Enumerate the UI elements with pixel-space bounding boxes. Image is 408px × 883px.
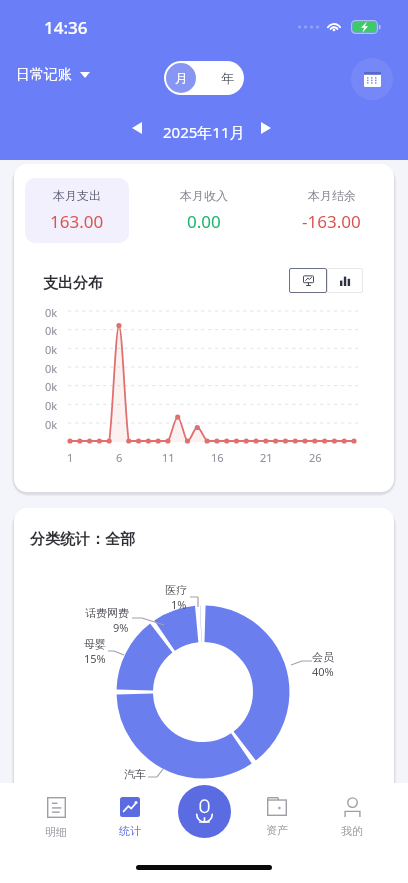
staticText: 统计 <box>119 824 141 838</box>
button[interactable]: Previous month <box>123 114 151 142</box>
button[interactable]: 统计 <box>96 790 164 850</box>
staticText: 0k <box>45 379 58 394</box>
staticText: 资产 <box>266 823 288 837</box>
staticText: 0k <box>45 398 58 413</box>
staticText: 0k <box>45 323 58 338</box>
staticText: 0.00 <box>187 210 221 233</box>
staticText: 2025年11月 <box>163 122 245 142</box>
staticText: 本月结余 <box>308 188 356 203</box>
staticText: 0k <box>45 342 58 357</box>
button[interactable]: Next month <box>252 114 280 142</box>
staticText: -163.00 <box>302 210 361 233</box>
staticText: 1% <box>171 597 187 612</box>
staticText: 年 <box>221 70 234 86</box>
staticText: 母婴 <box>84 637 106 651</box>
button[interactable]: 月 <box>166 63 196 93</box>
button[interactable]: 年 <box>212 63 242 93</box>
button[interactable]: 本月收入 <box>152 178 256 243</box>
staticText: 0k <box>45 417 58 432</box>
staticText: 16 <box>211 450 224 465</box>
staticText: 6 <box>116 450 123 465</box>
staticText: 15% <box>84 651 106 666</box>
staticText: 21 <box>260 450 273 465</box>
button[interactable]: 资产 <box>243 790 311 850</box>
button[interactable]: Calendar <box>351 58 393 100</box>
staticText: 9% <box>113 620 129 635</box>
button[interactable]: Voice record <box>178 785 231 838</box>
staticText: 11 <box>162 450 175 465</box>
staticText: 日常记账 <box>16 66 72 84</box>
staticText: 0k <box>45 305 58 320</box>
staticText: 会员 <box>312 650 334 664</box>
button[interactable]: 本月结余 <box>279 178 383 243</box>
staticText: 明细 <box>45 825 67 839</box>
staticText: 支出分布 <box>43 274 103 293</box>
staticText: 话费网费 <box>85 606 129 620</box>
staticText: 40% <box>312 664 334 679</box>
staticText: 26 <box>309 450 322 465</box>
staticText: 14:36 <box>44 16 88 39</box>
staticText: 月 <box>175 70 188 86</box>
staticText: 本月支出 <box>53 188 101 203</box>
staticText: 163.00 <box>50 210 104 233</box>
button[interactable]: Bar chart view <box>327 268 363 293</box>
staticText: 1 <box>67 450 74 465</box>
staticText: 本月收入 <box>180 188 228 203</box>
button[interactable]: 我的 <box>318 790 386 850</box>
staticText: 分类统计：全部 <box>30 530 135 549</box>
button[interactable]: Line chart view <box>289 268 327 293</box>
staticText: 汽车 <box>124 767 146 781</box>
button[interactable]: 明细 <box>22 790 90 850</box>
staticText: 0k <box>45 361 58 376</box>
staticText: 医疗 <box>165 583 187 597</box>
staticText: 我的 <box>341 824 363 838</box>
button[interactable]: 日常记账 <box>16 66 90 84</box>
button[interactable]: 本月支出 <box>25 178 129 243</box>
